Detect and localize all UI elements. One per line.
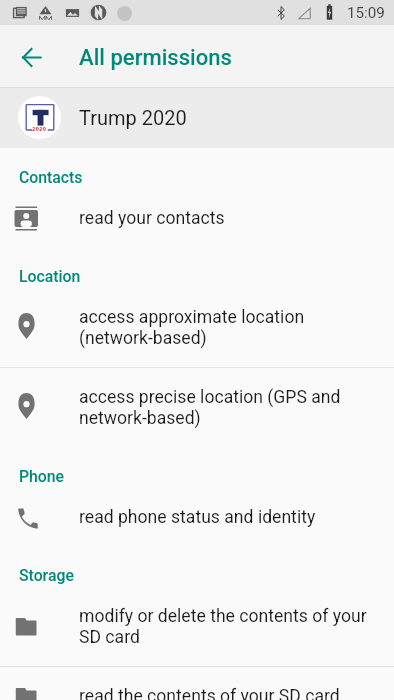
button[interactable]: read the contents of your SD card [0, 667, 394, 700]
staticText: Contacts [19, 168, 394, 187]
staticText: Phone [19, 467, 394, 486]
button[interactable]: read your contacts [0, 189, 394, 247]
staticText: read phone status and identity [79, 507, 316, 528]
staticText: access approximate location (network-bas… [79, 307, 305, 349]
staticText: read your contacts [79, 208, 225, 229]
button[interactable]: Trump 2020 [0, 88, 394, 148]
staticText: Trump 2020 [79, 106, 187, 129]
staticText: Location [19, 267, 394, 286]
staticText: All permissions [79, 44, 232, 70]
button[interactable]: modify or delete the contents of your SD… [0, 587, 394, 666]
staticText: 15:09 [347, 4, 385, 22]
staticText: modify or delete the contents of your SD… [79, 606, 367, 648]
button[interactable]: access approximate location (network-bas… [0, 288, 394, 367]
button[interactable]: read phone status and identity [0, 488, 394, 546]
staticText: access precise location (GPS and network… [79, 387, 341, 429]
staticText: read the contents of your SD card [79, 686, 340, 700]
staticText: Storage [19, 566, 394, 585]
button[interactable]: access precise location (GPS and network… [0, 368, 394, 447]
button[interactable]: Navigate up [3, 29, 59, 85]
